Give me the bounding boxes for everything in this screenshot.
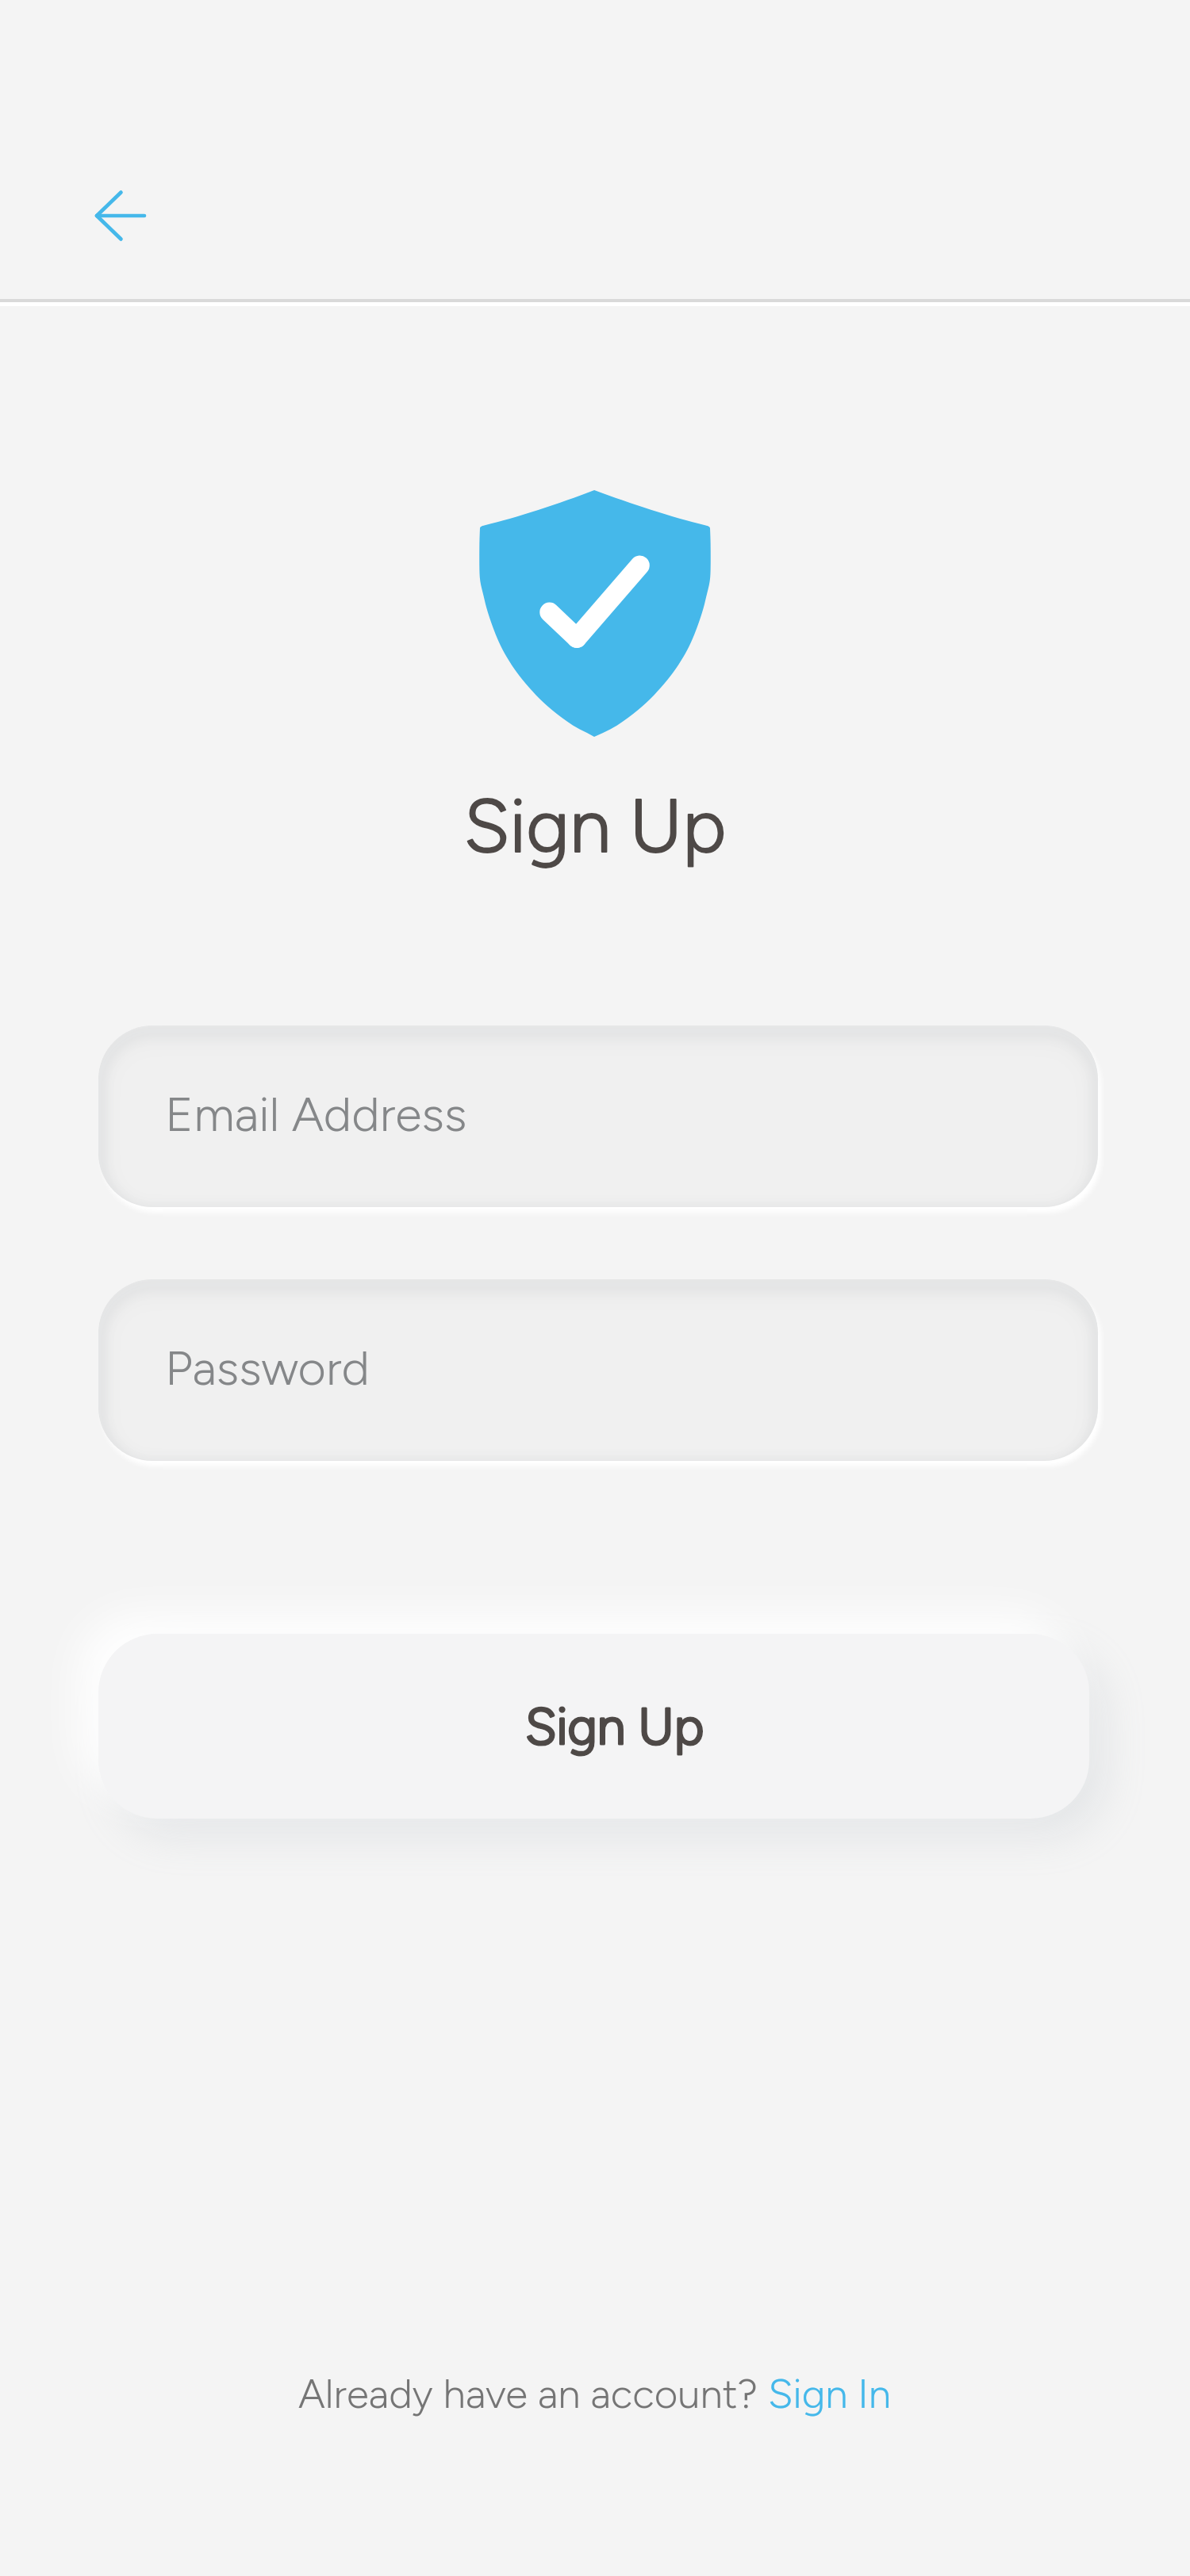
staticText: Sign Up: [0, 781, 1190, 871]
button[interactable]: Email Address: [98, 1025, 1098, 1207]
staticText: Sign Up: [525, 1696, 704, 1757]
button[interactable]: Sign Up: [98, 1634, 1089, 1819]
button[interactable]: Back: [73, 168, 168, 263]
staticText: Sign Up: [525, 1696, 704, 1757]
staticText: Sign Up: [0, 781, 1190, 871]
staticText: Email Address: [165, 1085, 467, 1143]
staticText: Password: [165, 1339, 370, 1397]
button[interactable]: Password: [98, 1279, 1098, 1461]
staticText: Already have an account?: [298, 2370, 768, 2418]
button[interactable]: Sign In: [768, 2370, 892, 2418]
